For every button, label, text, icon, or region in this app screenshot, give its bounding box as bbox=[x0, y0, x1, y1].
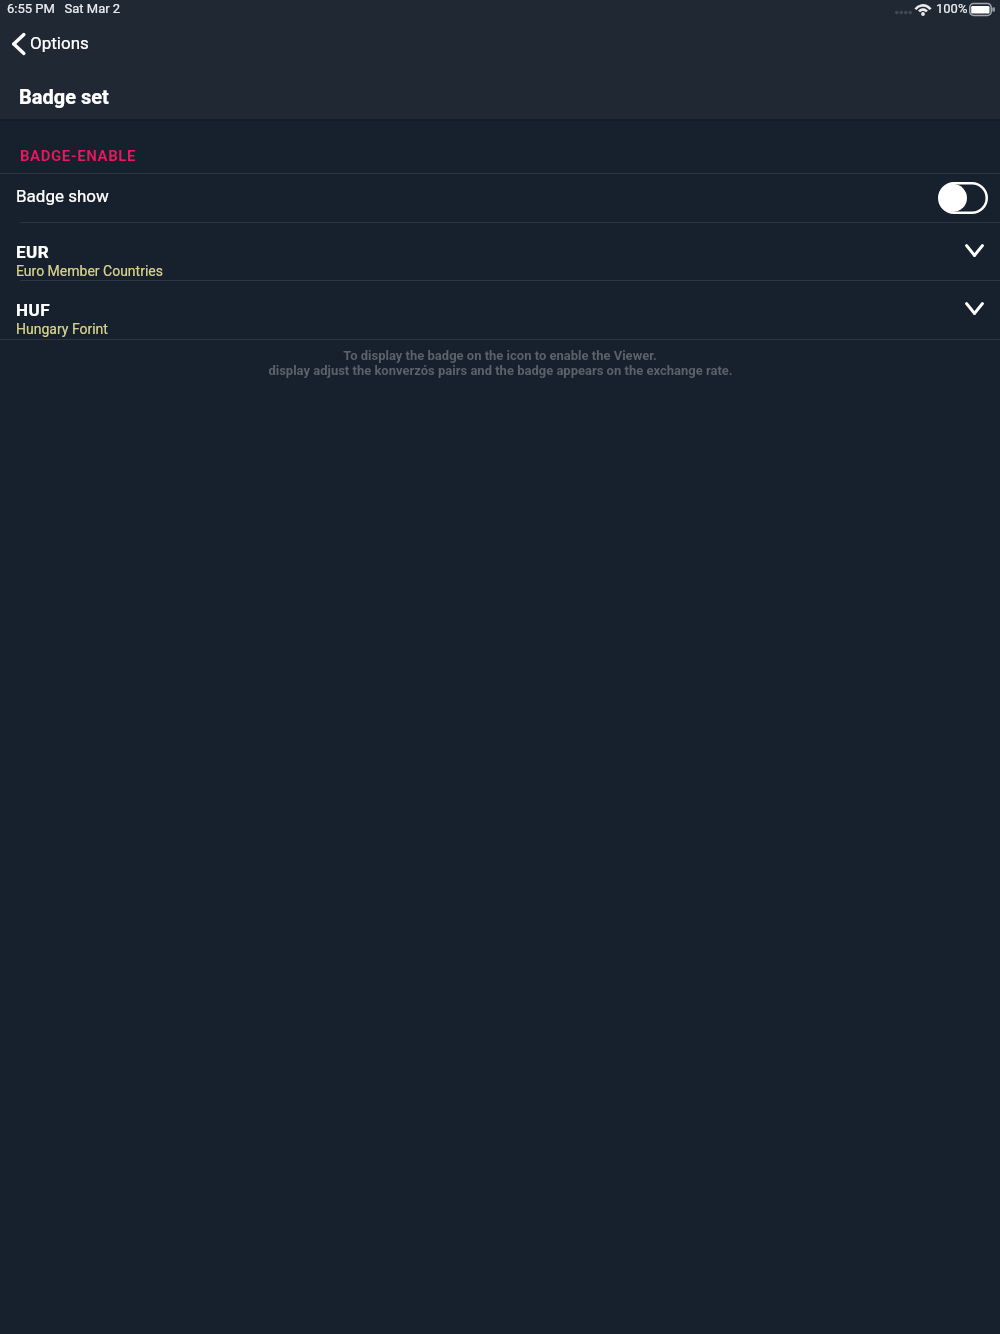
staticText: 100% bbox=[936, 1, 968, 16]
staticText: Badge set bbox=[19, 85, 109, 108]
staticText: Hungary Forint bbox=[16, 321, 108, 337]
button[interactable] bbox=[0, 173, 1000, 222]
staticText: 6:55 PM Sat Mar 2 bbox=[7, 1, 121, 16]
staticText: display adjust the konverzós pairs and t… bbox=[268, 363, 733, 378]
staticText: To display the badge on the icon to enab… bbox=[343, 348, 657, 363]
button[interactable] bbox=[0, 280, 1000, 339]
other: Back bbox=[12, 32, 26, 56]
button[interactable]: Back bbox=[0, 22, 1000, 66]
staticText: BADGE-ENABLE bbox=[20, 147, 136, 165]
button[interactable]: Badge show bbox=[938, 182, 988, 214]
other: Expand bbox=[965, 244, 984, 257]
staticText: Options bbox=[30, 33, 89, 53]
button[interactable] bbox=[0, 222, 1000, 280]
staticText: HUF bbox=[16, 300, 51, 320]
other: Expand bbox=[965, 302, 984, 315]
staticText: EUR bbox=[16, 242, 50, 262]
staticText: Euro Member Countries bbox=[16, 263, 163, 279]
staticText: Badge show bbox=[16, 186, 109, 206]
